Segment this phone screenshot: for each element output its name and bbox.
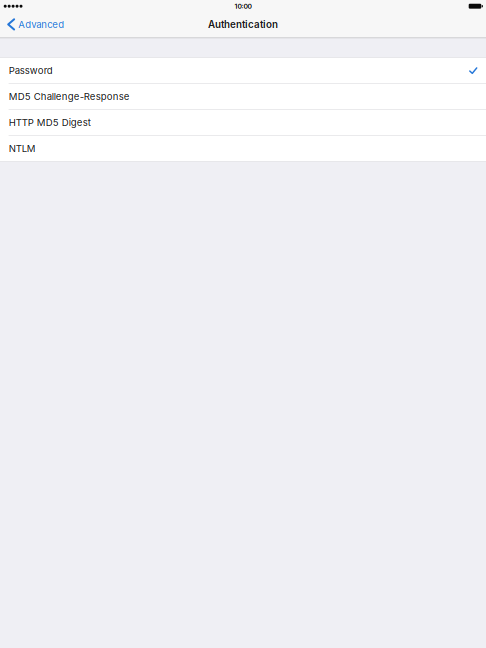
- button[interactable]: NTLM: [0, 135, 486, 161]
- button[interactable]: MD5 Challenge-Response: [0, 83, 486, 109]
- staticText: Advanced: [18, 19, 64, 30]
- staticText: HTTP MD5 Digest: [9, 117, 91, 128]
- staticText: MD5 Challenge-Response: [9, 91, 130, 102]
- staticText: 10:00: [234, 2, 251, 10]
- staticText: Password: [9, 65, 53, 76]
- staticText: NTLM: [9, 143, 36, 154]
- button[interactable]: Password: [0, 57, 486, 83]
- button[interactable]: HTTP MD5 Digest: [0, 109, 486, 135]
- staticText: Authentication: [208, 18, 278, 30]
- button[interactable]: Advanced: [0, 12, 70, 36]
